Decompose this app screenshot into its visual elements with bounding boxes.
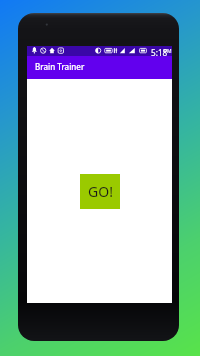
staticText: Brain Trainer [35,61,85,72]
button[interactable]: GO! [80,174,120,209]
staticText: GO! [88,182,113,201]
staticText: 5:18 [151,47,168,57]
staticText: PM [164,48,172,55]
